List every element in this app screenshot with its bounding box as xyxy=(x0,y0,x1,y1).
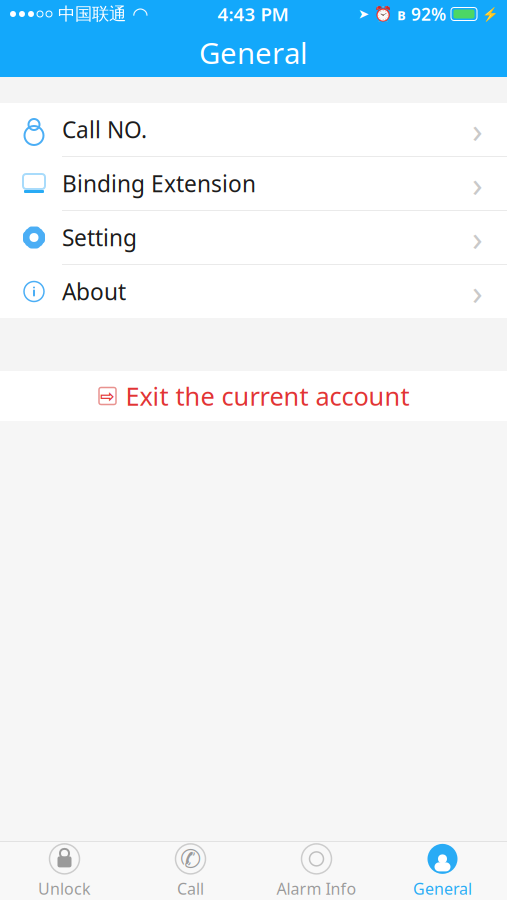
staticText: ➤ xyxy=(358,6,369,21)
staticText: ◠ xyxy=(132,3,148,25)
staticText: › xyxy=(472,268,483,314)
staticText: Alarm Info xyxy=(276,878,356,899)
staticText: › xyxy=(472,160,483,206)
staticText: 4:43 PM xyxy=(217,2,288,26)
staticText: General xyxy=(413,878,472,899)
button[interactable]: Binding Extension xyxy=(0,157,507,210)
staticText: ⚡ xyxy=(482,6,499,22)
staticText: Exit the current account xyxy=(125,379,409,413)
staticText: About xyxy=(62,276,126,306)
staticText: › xyxy=(472,106,483,152)
button[interactable]: ⇨ xyxy=(0,371,507,421)
staticText: Call NO. xyxy=(62,114,147,144)
button[interactable]: About xyxy=(0,265,507,318)
button[interactable]: General xyxy=(379,842,505,900)
staticText: 中国联通 xyxy=(58,3,126,25)
button[interactable]: Setting xyxy=(0,211,507,264)
staticText: Binding Extension xyxy=(62,168,256,198)
button[interactable]: Unlock xyxy=(1,842,127,900)
staticText: › xyxy=(472,214,483,260)
staticText: Unlock xyxy=(38,878,91,899)
staticText: 92% xyxy=(411,2,446,25)
staticText: ✆ xyxy=(180,844,201,873)
staticText: Call xyxy=(177,878,204,899)
button[interactable]: Alarm Info xyxy=(253,842,379,900)
staticText: General xyxy=(199,33,308,72)
staticText: Setting xyxy=(62,222,137,252)
button[interactable]: ✆ xyxy=(127,842,253,900)
staticText: ʙ xyxy=(397,3,406,25)
button[interactable]: Call NO. xyxy=(0,103,507,156)
staticText: ⏰ xyxy=(374,6,392,22)
staticText: ⇨ xyxy=(100,386,115,406)
